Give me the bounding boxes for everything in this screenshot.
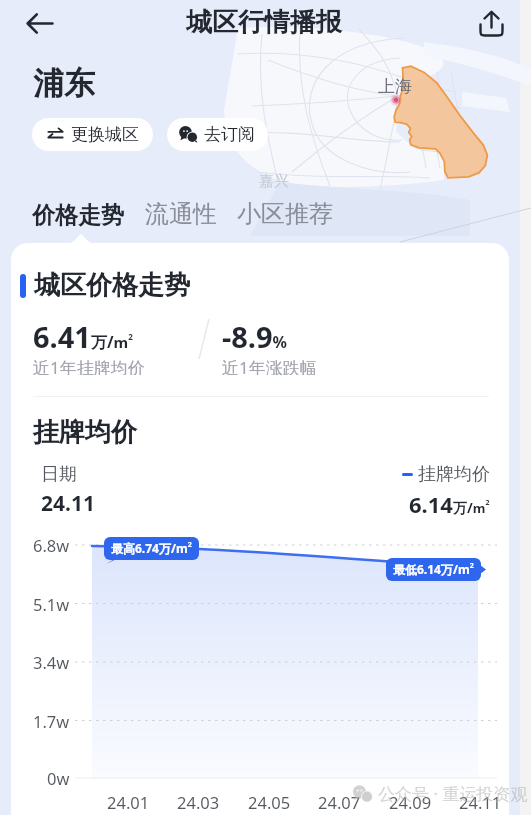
staticText: 5.1w: [33, 593, 70, 615]
staticText: 城区价格走势: [34, 269, 190, 302]
staticText: 小区推荐: [237, 199, 333, 229]
staticText: 3.4w: [33, 651, 70, 673]
staticText: 近1年涨跌幅: [222, 356, 317, 375]
button[interactable]: 流通性: [145, 199, 217, 230]
button[interactable]: Back: [17, 1, 61, 45]
button[interactable]: 去订阅: [167, 118, 268, 151]
staticText: 6.8w: [33, 534, 70, 556]
staticText: 上海: [378, 76, 412, 97]
staticText: 更换城区: [71, 124, 139, 145]
button[interactable]: 更换城区: [32, 118, 153, 151]
staticText: 流通性: [145, 199, 217, 229]
staticText: 0w: [47, 767, 70, 789]
staticText: 最低6.14万/m2: [393, 561, 474, 578]
staticText: 城区行情播报: [186, 6, 342, 39]
staticText: 挂牌均价: [33, 416, 137, 449]
staticText: 日期: [41, 463, 77, 486]
staticText: 公众号 · 重运投资观: [378, 782, 528, 805]
staticText: 24.09: [389, 791, 432, 813]
staticText: 价格走势: [32, 201, 124, 230]
staticText: 嘉兴: [259, 172, 289, 191]
staticText: 24.01: [107, 791, 150, 813]
staticText: 6.14万/m2: [409, 489, 490, 519]
staticText: 24.03: [177, 791, 220, 813]
staticText: 24.11: [459, 791, 502, 813]
staticText: 近1年挂牌均价: [33, 356, 145, 375]
staticText: 24.05: [248, 791, 291, 813]
staticText: 24.11: [41, 489, 95, 518]
staticText: 最高6.74万/m2: [111, 540, 192, 557]
button[interactable]: 小区推荐: [237, 199, 333, 230]
button[interactable]: 价格走势: [32, 201, 124, 230]
staticText: 浦东: [33, 64, 95, 103]
button[interactable]: Share: [470, 2, 512, 44]
staticText: 1.7w: [33, 710, 70, 732]
staticText: -8.9%: [222, 317, 288, 356]
staticText: 去订阅: [204, 124, 255, 145]
staticText: 挂牌均价: [418, 463, 490, 486]
staticText: 6.41万/m2: [33, 317, 133, 356]
staticText: 24.07: [318, 791, 361, 813]
